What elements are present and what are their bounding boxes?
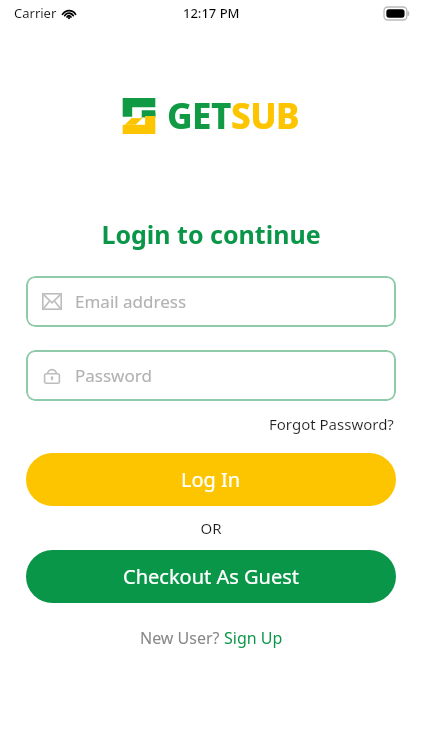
staticText: Login to continue [0,217,422,251]
button[interactable]: Password [26,350,396,401]
button[interactable]: Email [26,276,396,327]
staticText: GETSUB [167,92,300,140]
staticText: Carrier [14,4,57,22]
staticText: Password [75,364,152,387]
other: Password [42,367,62,384]
button[interactable]: Forgot Password? [267,412,396,436]
staticText: OR [0,518,422,538]
staticText: Email address [75,290,187,313]
staticText: Log In [181,466,241,493]
staticText: New User? [140,627,224,649]
button[interactable]: Checkout As Guest [26,550,396,603]
other: Email [42,293,62,310]
button[interactable]: Log In [26,453,396,506]
staticText: Sign Up [224,627,283,649]
staticText: Forgot Password? [269,414,394,434]
staticText: Checkout As Guest [123,563,299,590]
button[interactable]: Sign Up [224,627,283,649]
other: GetSub logo [122,98,156,134]
staticText: 12:17 PM [183,4,240,22]
